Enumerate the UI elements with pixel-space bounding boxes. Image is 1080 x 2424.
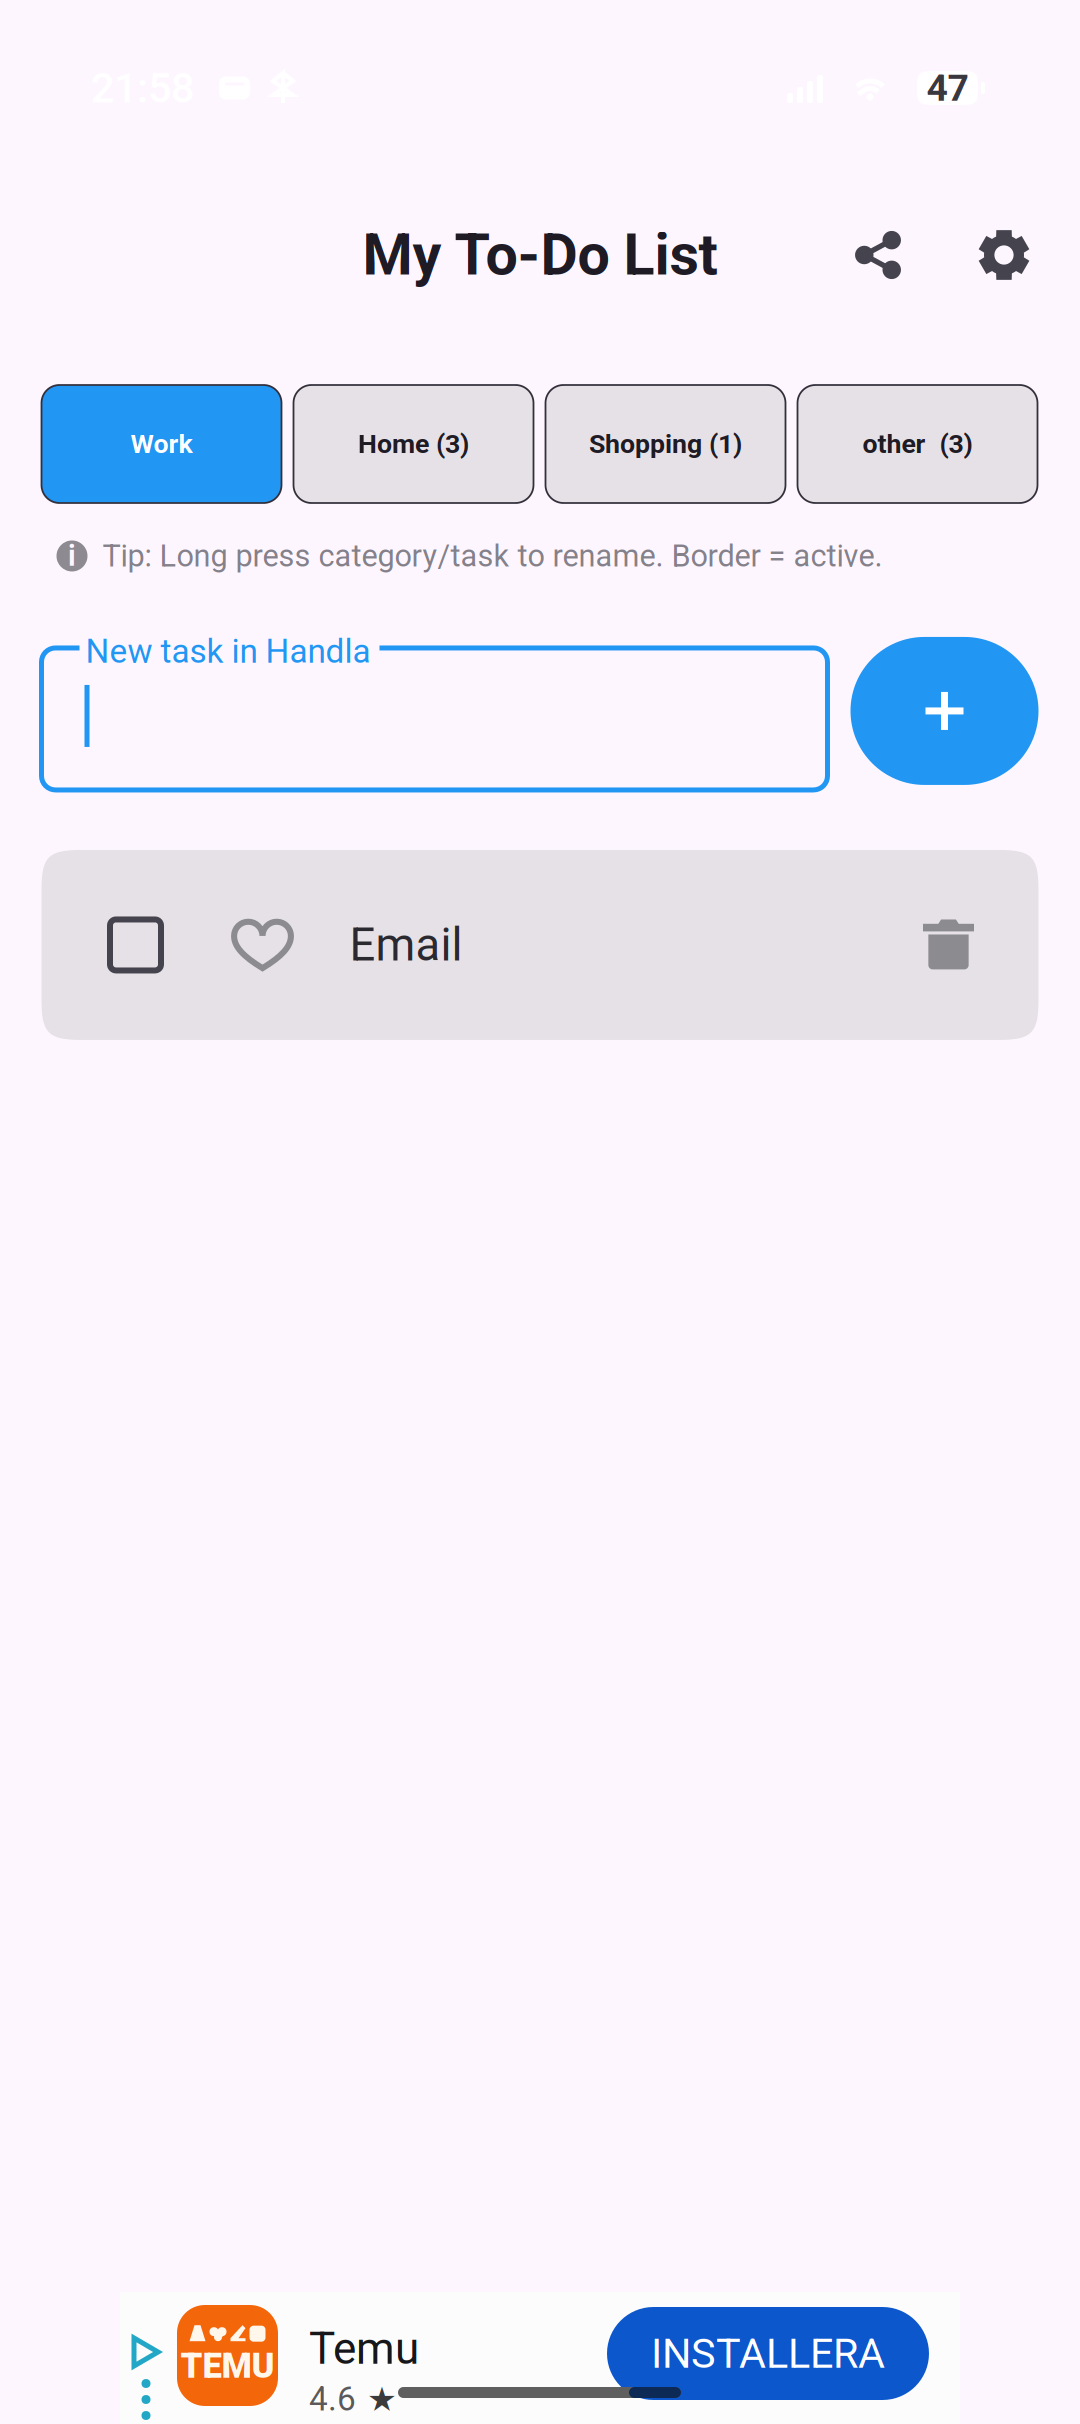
staticText: i: [68, 539, 76, 573]
button[interactable]: Shopping (1): [545, 385, 785, 503]
staticText: Work: [130, 428, 192, 460]
button[interactable]: other (3): [797, 385, 1037, 503]
staticText: 4.6: [309, 2380, 356, 2419]
staticText: ★: [367, 2380, 397, 2418]
staticText: 47: [926, 66, 968, 110]
staticText: INSTALLERA: [651, 2329, 885, 2378]
staticText: TEMU: [180, 2346, 274, 2386]
staticText: Temu: [309, 2323, 419, 2375]
button[interactable]: Settings: [950, 201, 1058, 309]
staticText: Home (3): [358, 428, 469, 460]
button[interactable]: Delete task: [896, 885, 1000, 1005]
staticText: New task in Handla: [85, 632, 370, 671]
button[interactable]: Add task: [850, 637, 1038, 785]
button[interactable]: INSTALLERA: [607, 2307, 929, 2400]
button[interactable]: Share: [824, 201, 932, 309]
staticText: My To-Do List: [362, 221, 717, 289]
staticText: other (3): [862, 428, 972, 460]
staticText: 21:58: [91, 64, 194, 112]
button[interactable]: Mark as done: [83, 885, 187, 1005]
staticText: Shopping (1): [589, 428, 742, 460]
staticText: Email: [349, 918, 462, 971]
staticText: Tip: Long press category/task to rename.…: [102, 538, 882, 574]
button[interactable]: Work: [41, 385, 281, 503]
button[interactable]: Home (3): [293, 385, 533, 503]
button[interactable]: Favourite: [210, 885, 314, 1005]
